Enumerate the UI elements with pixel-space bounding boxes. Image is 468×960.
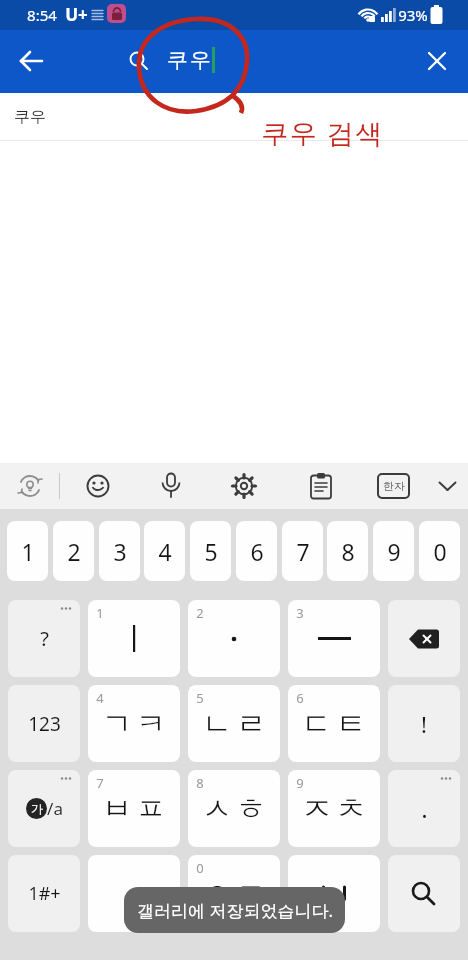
staticText: 4 (96, 689, 104, 707)
staticText: , (131, 879, 137, 909)
staticText: ㅇㅁ (200, 875, 268, 913)
staticText: 1 (96, 604, 104, 622)
staticText: ㄱㅋ (100, 705, 168, 743)
staticText: 6 (250, 536, 264, 567)
staticText: ㅅㅎ (200, 790, 268, 828)
staticText: 3 (113, 536, 127, 567)
staticText: ㄴㄹ (200, 705, 268, 743)
button[interactable]: 1#+ (8, 855, 80, 932)
button[interactable]: 한자 (377, 473, 410, 499)
staticText: 0 (433, 536, 447, 567)
button[interactable] (12, 41, 52, 81)
staticText: 8:54 (27, 5, 57, 25)
staticText: 8 (341, 536, 355, 567)
staticText: 5 (196, 689, 204, 707)
button[interactable] (388, 855, 460, 932)
button[interactable] (224, 466, 264, 506)
staticText: 쿠우 (166, 47, 212, 73)
staticText: 가 (31, 801, 43, 816)
staticText: 6 (296, 689, 304, 707)
button[interactable] (430, 469, 464, 503)
button[interactable] (10, 466, 50, 506)
button[interactable] (288, 855, 380, 932)
button[interactable]: 2 (53, 521, 94, 581)
button[interactable]: 2 (188, 600, 280, 677)
staticText: 쿠우 (14, 107, 46, 127)
button[interactable] (301, 466, 341, 506)
button[interactable]: 4 (144, 521, 185, 581)
button[interactable]: 4 (88, 685, 180, 762)
staticText: /a (47, 797, 63, 820)
staticText: 9 (296, 774, 304, 792)
staticText: 9 (387, 536, 401, 567)
staticText: 5 (204, 536, 218, 567)
button[interactable]: , (88, 855, 180, 932)
button[interactable]: 8 (327, 521, 368, 581)
button[interactable] (151, 466, 191, 506)
staticText: ㄷㅌ (300, 705, 368, 743)
staticText: 93% (398, 5, 428, 25)
button[interactable]: 9 (288, 770, 380, 847)
button[interactable]: 5 (190, 521, 231, 581)
button[interactable] (78, 466, 118, 506)
button[interactable]: 1 (7, 521, 48, 581)
staticText: 8 (196, 774, 204, 792)
button[interactable]: 6 (288, 685, 380, 762)
button[interactable]: . (388, 770, 460, 847)
staticText: 1#+ (28, 881, 61, 906)
button[interactable]: 123 (8, 685, 80, 762)
staticText: 1 (21, 536, 35, 567)
button[interactable]: ! (388, 685, 460, 762)
staticText: 123 (28, 711, 61, 737)
button[interactable]: 가 (8, 770, 80, 847)
staticText: 쿠우 검색 (261, 114, 384, 151)
staticText: . (421, 792, 428, 825)
staticText: 4 (158, 536, 172, 567)
staticText: 7 (96, 774, 104, 792)
button[interactable]: 6 (236, 521, 277, 581)
staticText: ㅈㅊ (300, 790, 368, 828)
button[interactable]: 7 (88, 770, 180, 847)
button[interactable]: 1 (88, 600, 180, 677)
staticText: 갤러리에 저장되었습니다. (137, 899, 333, 922)
staticText: U+ (65, 3, 88, 26)
staticText: ? (40, 625, 49, 652)
staticText: 2 (67, 536, 81, 567)
staticText: 3 (296, 604, 304, 622)
button[interactable]: ? (8, 600, 80, 677)
button[interactable]: 8 (188, 770, 280, 847)
staticText: ! (421, 709, 427, 739)
button[interactable]: 3 (99, 521, 140, 581)
button[interactable]: 0 (188, 855, 280, 932)
staticText: 한자 (383, 479, 405, 493)
button[interactable]: 7 (282, 521, 323, 581)
staticText: 7 (296, 536, 310, 567)
button[interactable]: 5 (188, 685, 280, 762)
button[interactable]: 쿠우 (0, 93, 468, 141)
button[interactable]: 0 (419, 521, 460, 581)
button[interactable] (388, 600, 460, 677)
staticText: 2 (196, 604, 204, 622)
staticText: ㅂㅍ (100, 790, 168, 828)
staticText: 0 (196, 859, 204, 877)
button[interactable]: 9 (373, 521, 414, 581)
button[interactable] (417, 41, 457, 81)
button[interactable]: 3 (288, 600, 380, 677)
